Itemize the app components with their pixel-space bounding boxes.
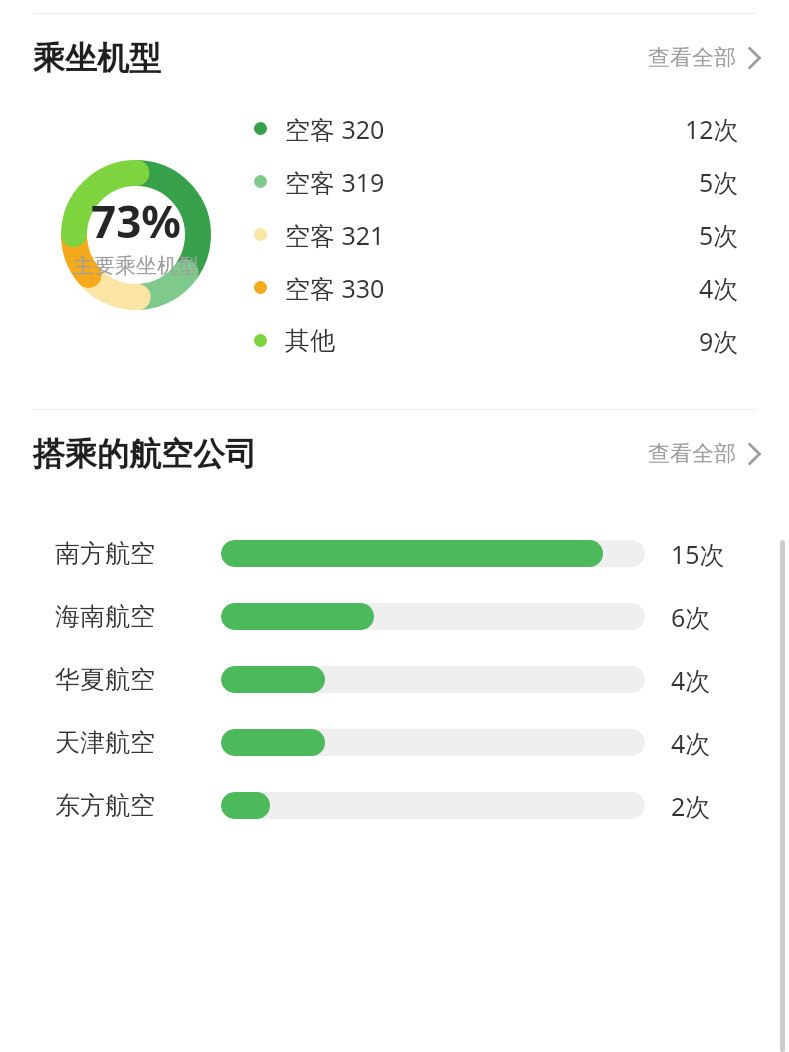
button[interactable]: 空客 319 [254,155,739,208]
staticText: 5次 [699,218,739,252]
staticText: 东方航空 [55,790,221,821]
staticText: 2次 [671,789,711,823]
staticText: 73% [91,191,182,251]
staticText: 空客 320 [285,112,385,146]
staticText: 海南航空 [55,601,221,632]
staticText: 南方航空 [55,538,221,569]
staticText: 4次 [671,726,711,760]
staticText: 其他 [285,325,335,356]
staticText: 4次 [671,663,711,697]
button[interactable]: 海南航空 [55,585,789,648]
staticText: 12次 [685,112,739,146]
staticText: 空客 319 [285,165,385,199]
staticText: 6次 [671,600,711,634]
staticText: 15次 [671,537,725,571]
staticText: 天津航空 [55,727,221,758]
button[interactable]: 空客 321 [254,208,739,261]
button[interactable]: 乘坐机型 [0,14,789,102]
staticText: 空客 321 [285,218,385,252]
staticText: 搭乘的航空公司 [33,434,257,474]
staticText: 查看全部 [648,44,736,72]
staticText: 华夏航空 [55,664,221,695]
staticText: 空客 330 [285,271,385,305]
button[interactable]: 其他 [254,314,739,367]
staticText: 主要乘坐机型 [73,253,199,279]
staticText: 9次 [699,324,739,358]
button[interactable]: 空客 320 [254,102,739,155]
button[interactable]: 天津航空 [55,711,789,774]
button[interactable]: 华夏航空 [55,648,789,711]
staticText: 乘坐机型 [33,38,161,78]
staticText: 4次 [699,271,739,305]
button[interactable]: 南方航空 [55,522,789,585]
staticText: 查看全部 [648,440,736,468]
button[interactable]: 空客 330 [254,261,739,314]
staticText: 5次 [699,165,739,199]
button[interactable]: 东方航空 [55,774,789,837]
button[interactable]: 搭乘的航空公司 [0,410,789,498]
